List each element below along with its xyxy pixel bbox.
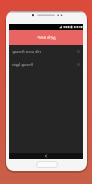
button[interactable]: સંપૂર્ણ ગુજરાતી xyxy=(9,58,83,71)
staticText: ગુજરાતી ગરબા ગીત xyxy=(12,49,42,54)
button[interactable]: ગુજરાતી ગરબા ગીત xyxy=(9,45,83,58)
staticText: સંપૂર્ણ ગુજરાતી xyxy=(12,62,33,67)
other: Download xyxy=(77,50,80,53)
button[interactable]: Back xyxy=(44,154,48,158)
staticText: ગરબા સંગ્રહ xyxy=(37,35,56,40)
other: Download xyxy=(77,63,80,66)
